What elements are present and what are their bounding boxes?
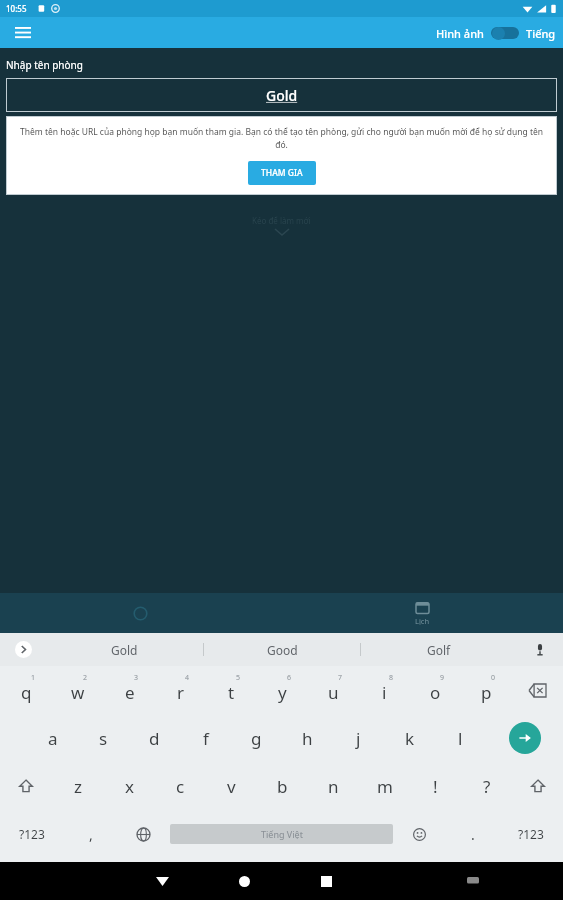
staticText: h [302, 727, 313, 750]
staticText: 1 [31, 673, 36, 683]
button[interactable]: Nhập bằng giọng nói [517, 633, 563, 666]
staticText: j [356, 727, 361, 750]
button[interactable]: d [129, 714, 180, 762]
staticText: x [125, 775, 134, 798]
staticText: ! [433, 775, 438, 798]
staticText: Kéo để làm mới [252, 215, 311, 226]
button[interactable]: s [78, 714, 129, 762]
staticText: w [71, 681, 85, 704]
staticText: y [278, 681, 287, 704]
button[interactable]: 1 [0, 666, 52, 714]
button[interactable]: g [231, 714, 282, 762]
button[interactable]: 6 [257, 666, 308, 714]
staticText: 9 [440, 673, 445, 683]
button[interactable]: 5 [206, 666, 257, 714]
button[interactable]: 3 [104, 666, 155, 714]
staticText: 5 [236, 673, 241, 683]
staticText: z [74, 775, 82, 798]
staticText: . [471, 825, 475, 844]
staticText: Lịch [415, 616, 430, 626]
button[interactable]: b [257, 762, 308, 810]
staticText: 2 [83, 673, 88, 683]
staticText: Hình ảnh [436, 26, 484, 41]
staticText: Nhập tên phòng [6, 58, 83, 72]
button[interactable]: c [155, 762, 206, 810]
button[interactable]: Gold [6, 78, 557, 112]
staticText: , [89, 825, 93, 844]
staticText: a [48, 727, 58, 750]
button[interactable]: ?123 [499, 810, 563, 858]
button[interactable]: k [384, 714, 435, 762]
staticText: o [430, 681, 441, 704]
button[interactable]: Xóa [512, 666, 563, 714]
button[interactable]: ?123 [0, 810, 64, 858]
button[interactable]: Toggle chế độ [491, 24, 519, 42]
button[interactable]: . [446, 810, 499, 858]
button[interactable]: Mở rộng [0, 633, 46, 666]
staticText: Tiếng Việt [261, 828, 303, 840]
button[interactable]: n [308, 762, 359, 810]
staticText: Golf [427, 642, 451, 658]
button[interactable]: Gold [46, 633, 203, 666]
staticText: ?123 [518, 826, 544, 842]
button[interactable]: j [333, 714, 384, 762]
staticText: r [177, 681, 185, 704]
staticText: s [99, 727, 108, 750]
button[interactable]: , [64, 810, 117, 858]
staticText: 4 [185, 673, 190, 683]
button[interactable]: Tiếng Việt [170, 824, 393, 844]
button[interactable]: a [27, 714, 78, 762]
staticText: ? [483, 775, 491, 798]
button[interactable]: z [52, 762, 104, 810]
staticText: 0 [491, 673, 496, 683]
staticText: f [203, 727, 209, 750]
button[interactable]: x [104, 762, 155, 810]
button[interactable]: l [435, 714, 486, 762]
button[interactable]: 8 [359, 666, 410, 714]
button[interactable]: Đổi ngôn ngữ [117, 810, 170, 858]
staticText: m [377, 775, 393, 798]
staticText: d [149, 727, 160, 750]
button[interactable]: 9 [410, 666, 461, 714]
button[interactable]: Biểu tượng cảm xúc [393, 810, 446, 858]
staticText: l [458, 727, 463, 750]
button[interactable]: Menu [9, 19, 37, 47]
button[interactable]: Shift [0, 762, 52, 810]
staticText: ?123 [19, 826, 45, 842]
staticText: u [328, 681, 339, 704]
button[interactable]: m [359, 762, 410, 810]
staticText: 7 [338, 673, 343, 683]
button[interactable]: ! [410, 762, 461, 810]
staticText: Gold [266, 86, 298, 105]
staticText: t [228, 681, 235, 704]
button[interactable]: Good [204, 633, 360, 666]
button[interactable]: Shift [512, 762, 563, 810]
button[interactable]: 7 [308, 666, 359, 714]
staticText: v [227, 775, 236, 798]
button[interactable]: v [206, 762, 257, 810]
button[interactable]: Bàn phím [432, 862, 514, 900]
staticText: k [405, 727, 415, 750]
staticText: 10:55 [6, 3, 27, 14]
button[interactable]: 0 [461, 666, 512, 714]
button[interactable]: f [180, 714, 231, 762]
button[interactable]: Home [203, 862, 285, 900]
staticText: 6 [287, 673, 292, 683]
button[interactable]: ? [461, 762, 512, 810]
button[interactable]: Golf [361, 633, 517, 666]
staticText: n [328, 775, 339, 798]
button[interactable]: h [282, 714, 333, 762]
button[interactable]: Lịch [281, 593, 563, 633]
staticText: Tiếng [526, 26, 556, 41]
staticText: 3 [134, 673, 139, 683]
staticText: Good [267, 642, 298, 658]
staticText: b [277, 775, 288, 798]
button[interactable]: 2 [52, 666, 104, 714]
staticText: q [21, 681, 32, 704]
button[interactable]: Recents [285, 862, 367, 900]
button[interactable]: THAM GIA [248, 161, 316, 185]
button[interactable]: 4 [155, 666, 206, 714]
button[interactable]: Enter [486, 714, 563, 762]
button[interactable]: Back [121, 862, 203, 900]
